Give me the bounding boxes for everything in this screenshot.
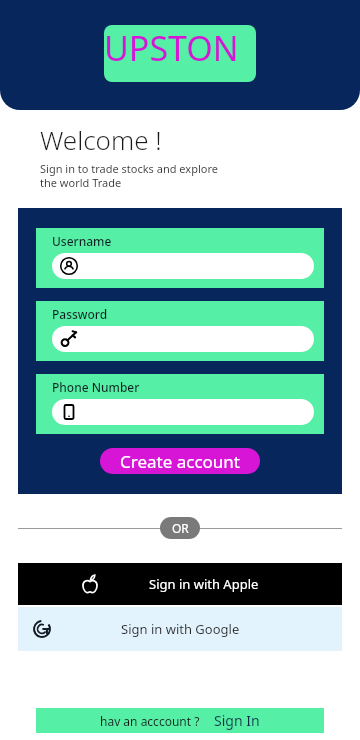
button[interactable]: Create account bbox=[100, 448, 260, 474]
staticText: hav an acccount ? bbox=[100, 713, 200, 729]
staticText: Sign in with Google bbox=[121, 620, 240, 638]
button[interactable]: hav an acccount ? bbox=[36, 708, 324, 733]
staticText: OR bbox=[172, 520, 189, 536]
staticText: Sign in with Apple bbox=[149, 575, 259, 593]
button[interactable]: Apple logo bbox=[18, 563, 342, 605]
other: Apple logo bbox=[66, 574, 114, 594]
staticText: Phone Number bbox=[52, 379, 140, 395]
staticText: UPSTONK bbox=[104, 25, 256, 82]
button[interactable]: Username bbox=[36, 228, 324, 288]
staticText: Password bbox=[52, 306, 108, 322]
button[interactable]: UPSTONK bbox=[104, 25, 256, 82]
button[interactable]: Google logo bbox=[18, 607, 342, 651]
staticText: Create account bbox=[120, 450, 240, 473]
button[interactable]: Phone Number bbox=[36, 374, 324, 434]
button[interactable]: Password bbox=[36, 301, 324, 361]
other: Google logo bbox=[18, 619, 66, 639]
staticText: Welcome ! bbox=[40, 122, 162, 157]
staticText: Sign in to trade stocks and explore the … bbox=[40, 161, 218, 190]
staticText: Username bbox=[52, 233, 112, 249]
staticText: Sign In bbox=[214, 711, 260, 730]
